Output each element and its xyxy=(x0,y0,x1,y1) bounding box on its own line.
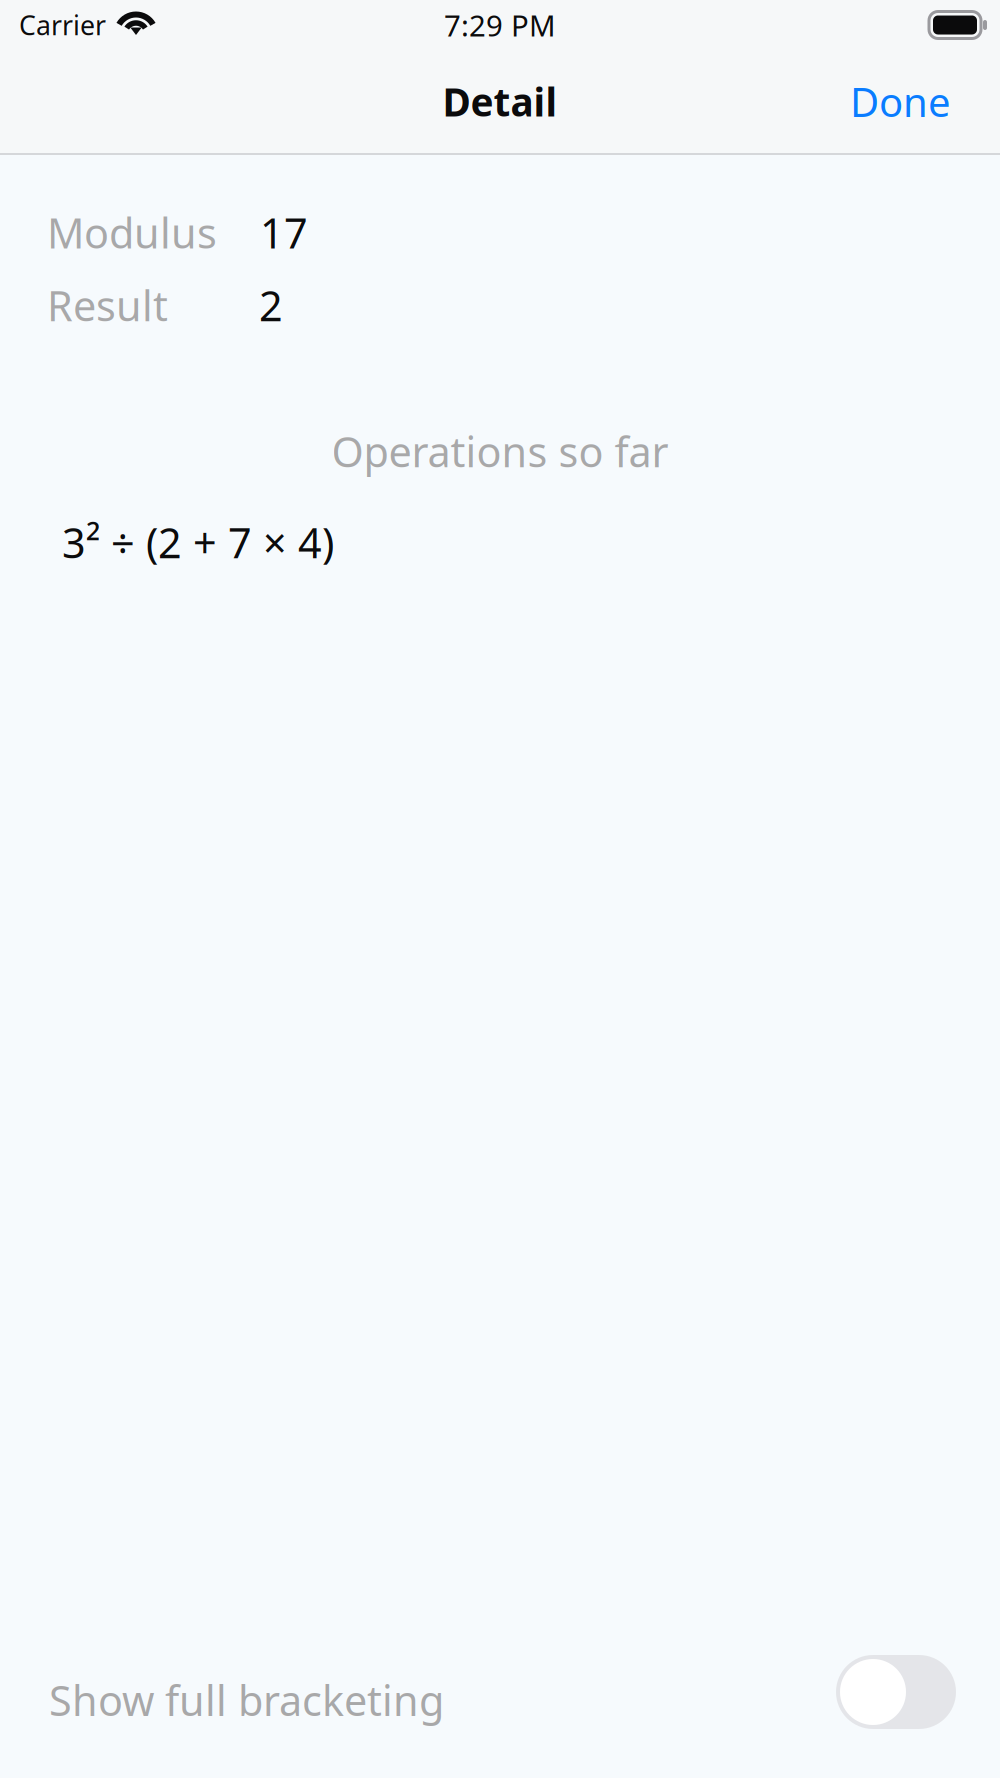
button[interactable]: Done xyxy=(838,61,963,142)
staticText: Carrier xyxy=(19,7,106,43)
button[interactable]: Show full bracketing xyxy=(836,1655,956,1729)
staticText: 3² ÷ (2 + 7 × 4) xyxy=(62,515,334,570)
staticText: Done xyxy=(850,75,951,128)
staticText: 2 xyxy=(259,278,283,333)
staticText: Detail xyxy=(442,76,557,127)
staticText: Result xyxy=(47,278,168,333)
button[interactable]: Show full bracketing xyxy=(0,1652,1000,1748)
staticText: 7:29 PM xyxy=(444,5,556,44)
staticText: Operations so far xyxy=(331,424,668,479)
staticText: Modulus xyxy=(47,205,217,260)
staticText: Show full bracketing xyxy=(49,1673,444,1727)
staticText: 17 xyxy=(260,205,308,260)
